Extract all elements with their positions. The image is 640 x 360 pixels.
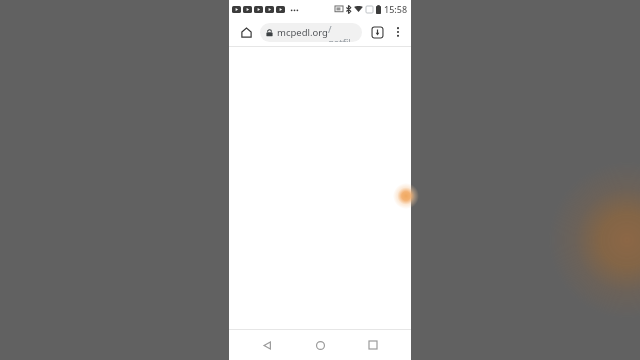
staticText: mcpedl.org <box>277 26 328 39</box>
button[interactable]: Back <box>252 330 282 360</box>
button[interactable]: mcpedl.org <box>260 23 362 42</box>
button[interactable]: More options <box>389 23 407 41</box>
staticText: 15:58 <box>384 3 408 15</box>
button[interactable]: Home <box>236 22 256 42</box>
button[interactable]: Home <box>305 330 335 360</box>
button[interactable]: Recent apps <box>358 330 388 360</box>
button[interactable]: Downloads <box>367 22 387 42</box>
staticText: /getfile <box>328 23 356 42</box>
